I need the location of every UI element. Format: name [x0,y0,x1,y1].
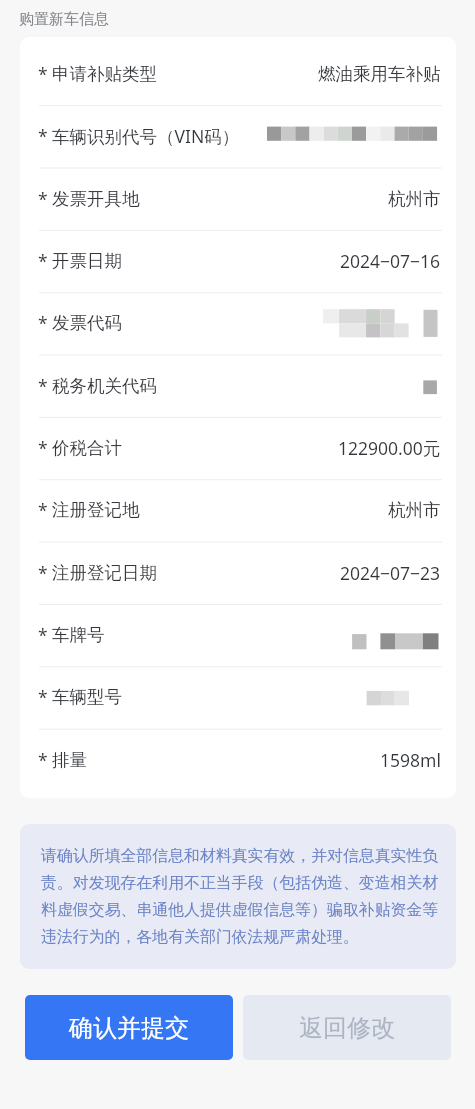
staticText: * [38,498,48,522]
staticText: 杭州市 [388,188,441,210]
staticText: 1598ml [380,748,441,772]
staticText: * [38,623,48,647]
staticText: 请确认所填全部信息和材料真实有效，并对信息真实性负责。对发现存在利用不正当手段（… [41,846,443,947]
staticText: 购置新车信息 [19,10,109,29]
staticText: 开票日期 [52,250,122,272]
staticText: 燃油乘用车补贴 [318,63,441,85]
staticText: 2024−07−16 [340,249,441,273]
staticText: 注册登记日期 [52,562,157,584]
staticText: 车辆型号 [52,686,122,708]
staticText: * [38,436,48,460]
staticText: 注册登记地 [52,499,140,521]
staticText: 发票代码 [52,312,122,334]
staticText: 返回修改 [299,1013,395,1043]
staticText: 确认并提交 [69,1013,189,1043]
button[interactable]: 请确认所填全部信息和材料真实有效，并对信息真实性负责。对发现存在利用不正当手段（… [20,824,456,969]
staticText: 2024−07−23 [340,561,441,585]
staticText: * [38,249,48,273]
staticText: * [38,311,48,335]
staticText: 价税合计 [52,437,122,459]
button[interactable]: 确认并提交 [25,995,233,1060]
staticText: 发票开具地 [52,188,140,210]
staticText: 税务机关代码 [52,375,157,397]
staticText: * [38,62,48,86]
staticText: 申请补贴类型 [52,63,157,85]
staticText: 车辆识别代号（VIN码） [52,124,240,148]
staticText: 122900.00元 [338,436,441,460]
staticText: 排量 [52,749,87,771]
staticText: * [38,187,48,211]
staticText: * [38,124,48,148]
staticText: * [38,561,48,585]
staticText: * [38,374,48,398]
staticText: * [38,748,48,772]
staticText: 车牌号 [52,624,105,646]
button[interactable]: 返回修改 [243,995,451,1060]
staticText: 杭州市 [388,499,441,521]
staticText: * [38,685,48,709]
